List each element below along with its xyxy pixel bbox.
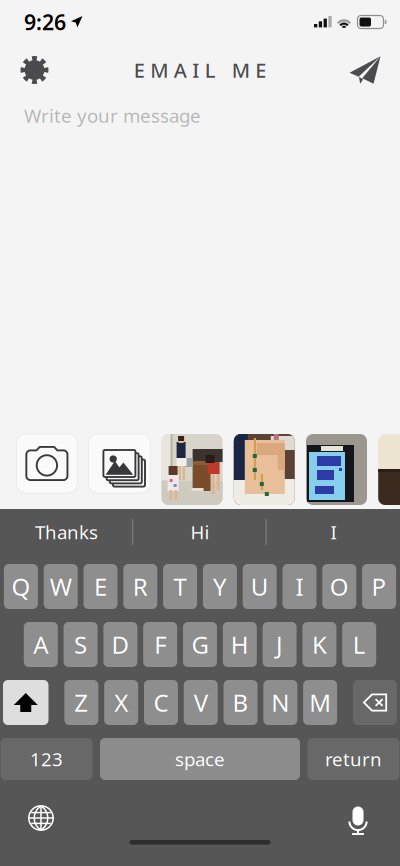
button[interactable]: Recent photo 3 bbox=[306, 434, 367, 505]
staticText: X bbox=[114, 687, 128, 718]
button[interactable]: Take photo bbox=[16, 434, 77, 505]
staticText: G bbox=[191, 629, 208, 660]
button[interactable]: I bbox=[282, 564, 316, 609]
staticText: V bbox=[194, 687, 208, 718]
staticText: I bbox=[295, 571, 303, 602]
staticText: J bbox=[276, 629, 283, 660]
button[interactable]: Delete bbox=[353, 680, 397, 725]
button[interactable]: Dictate bbox=[336, 798, 380, 838]
staticText: L bbox=[353, 629, 366, 660]
button[interactable]: Q bbox=[4, 564, 38, 609]
button[interactable]: M bbox=[303, 680, 337, 725]
button[interactable]: space bbox=[100, 738, 300, 780]
staticText: P bbox=[372, 571, 387, 602]
button[interactable]: E bbox=[83, 564, 117, 609]
button[interactable]: P bbox=[362, 564, 396, 609]
button[interactable]: V bbox=[184, 680, 218, 725]
staticText: M bbox=[309, 687, 331, 718]
staticText: U bbox=[251, 571, 269, 602]
button[interactable]: 123 bbox=[1, 738, 93, 780]
staticText: EMAIL ME bbox=[134, 57, 266, 83]
button[interactable]: A bbox=[24, 622, 58, 667]
button[interactable]: L bbox=[342, 622, 376, 667]
staticText: A bbox=[33, 629, 48, 660]
button[interactable]: C bbox=[144, 680, 178, 725]
staticText: Write your message bbox=[24, 103, 201, 128]
button[interactable]: I bbox=[267, 509, 400, 555]
staticText: W bbox=[50, 571, 72, 602]
button[interactable]: Thanks bbox=[0, 509, 133, 555]
staticText: Z bbox=[74, 687, 88, 718]
button[interactable]: T bbox=[163, 564, 197, 609]
staticText: K bbox=[312, 629, 327, 660]
button[interactable]: F bbox=[143, 622, 177, 667]
button[interactable]: U bbox=[243, 564, 277, 609]
button[interactable]: Hi bbox=[133, 509, 267, 555]
staticText: S bbox=[74, 629, 87, 660]
staticText: 9:26 bbox=[24, 8, 66, 36]
button[interactable]: Y bbox=[203, 564, 237, 609]
staticText: 123 bbox=[30, 747, 63, 771]
button[interactable]: G bbox=[183, 622, 217, 667]
button[interactable]: Shift bbox=[3, 680, 48, 725]
button[interactable]: Send bbox=[330, 46, 400, 94]
staticText: D bbox=[111, 629, 129, 660]
button[interactable]: X bbox=[104, 680, 138, 725]
staticText: T bbox=[174, 571, 187, 602]
button[interactable]: S bbox=[64, 622, 98, 667]
button[interactable]: Settings bbox=[0, 46, 69, 94]
staticText: Q bbox=[11, 571, 30, 602]
button[interactable]: D bbox=[103, 622, 137, 667]
staticText: space bbox=[175, 747, 225, 771]
button[interactable]: W bbox=[44, 564, 78, 609]
button[interactable]: J bbox=[263, 622, 297, 667]
staticText: E bbox=[94, 571, 107, 602]
button[interactable]: Z bbox=[64, 680, 98, 725]
button[interactable]: K bbox=[302, 622, 336, 667]
button[interactable]: Photo library bbox=[88, 434, 150, 505]
staticText: I bbox=[330, 520, 336, 544]
staticText: H bbox=[231, 629, 249, 660]
button[interactable]: H bbox=[223, 622, 257, 667]
button[interactable]: Recent photo 2 bbox=[234, 434, 295, 505]
button[interactable]: Next keyboard bbox=[19, 798, 63, 838]
staticText: B bbox=[232, 687, 248, 718]
staticText: N bbox=[271, 687, 289, 718]
staticText: return bbox=[325, 747, 382, 771]
staticText: O bbox=[330, 571, 349, 602]
button[interactable]: Recent photo 1 bbox=[162, 434, 223, 505]
button[interactable]: O bbox=[322, 564, 356, 609]
button[interactable]: Recent photo 4 bbox=[378, 434, 400, 505]
staticText: F bbox=[154, 629, 166, 660]
button[interactable]: return bbox=[307, 738, 399, 780]
button[interactable]: R bbox=[123, 564, 157, 609]
staticText: Y bbox=[213, 571, 227, 602]
staticText: Thanks bbox=[35, 520, 98, 544]
staticText: C bbox=[153, 687, 168, 718]
staticText: Hi bbox=[190, 520, 209, 544]
button[interactable]: N bbox=[263, 680, 297, 725]
staticText: R bbox=[133, 571, 148, 602]
button[interactable]: B bbox=[223, 680, 257, 725]
